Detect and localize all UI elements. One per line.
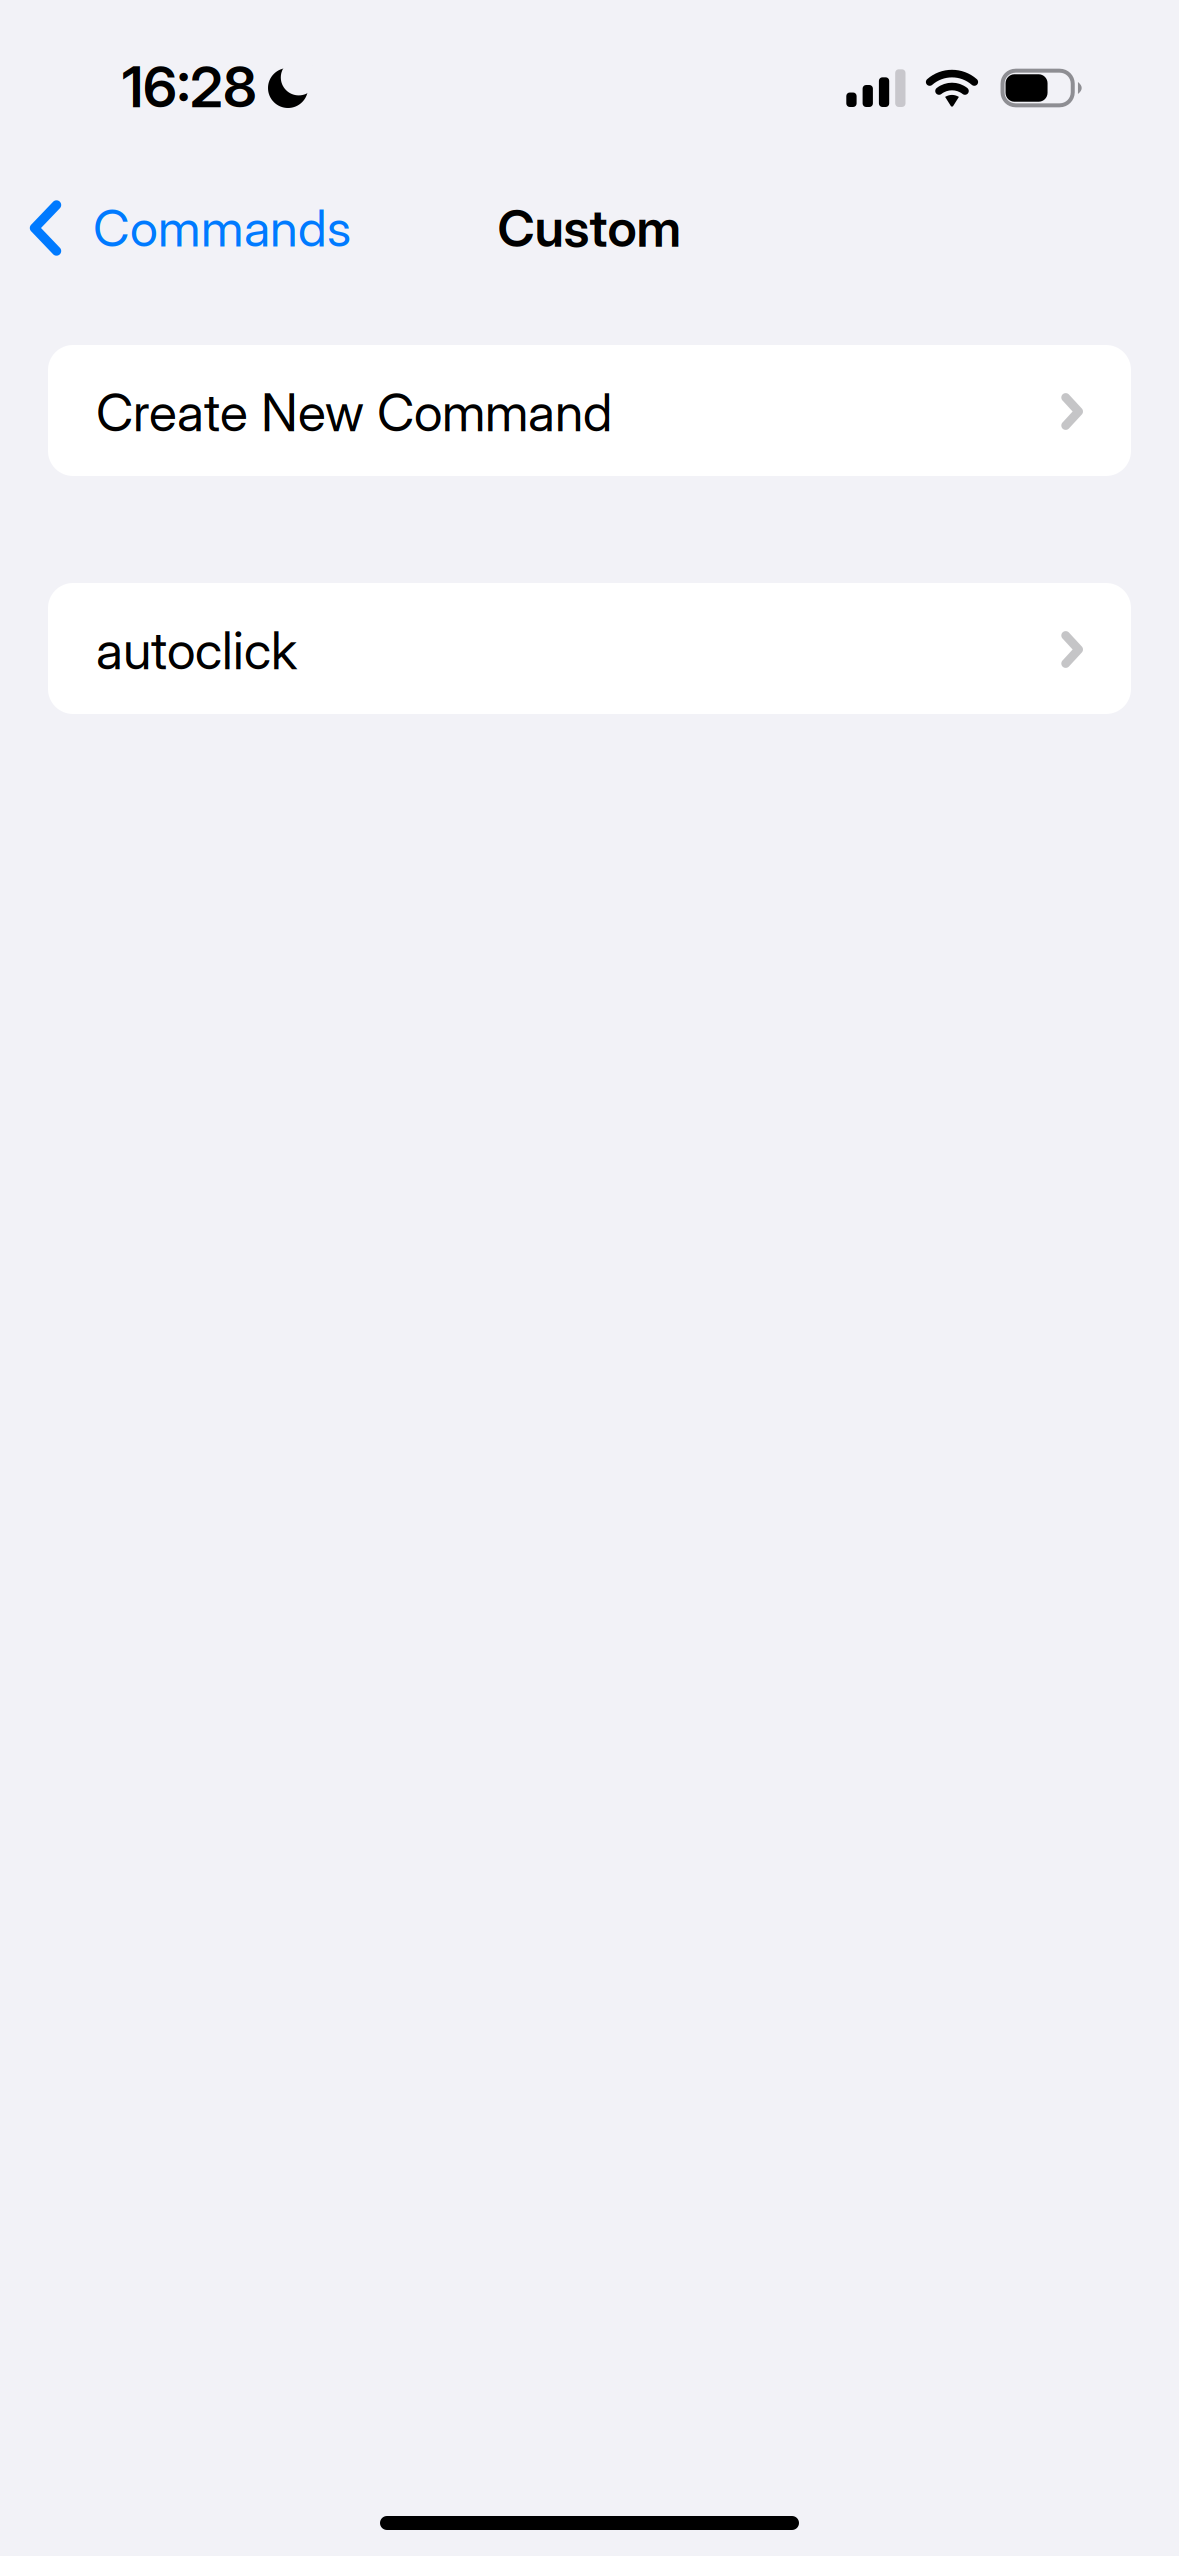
staticText: autoclick [96,619,297,682]
staticText: 16:28 [122,53,257,121]
button[interactable]: Create New Command [48,345,1131,476]
staticText: Create New Command [96,381,612,444]
staticText: Commands [93,197,351,259]
staticText: Custom [497,197,681,259]
button[interactable]: autoclick [48,583,1131,714]
button[interactable]: Back to Commands [0,184,371,272]
